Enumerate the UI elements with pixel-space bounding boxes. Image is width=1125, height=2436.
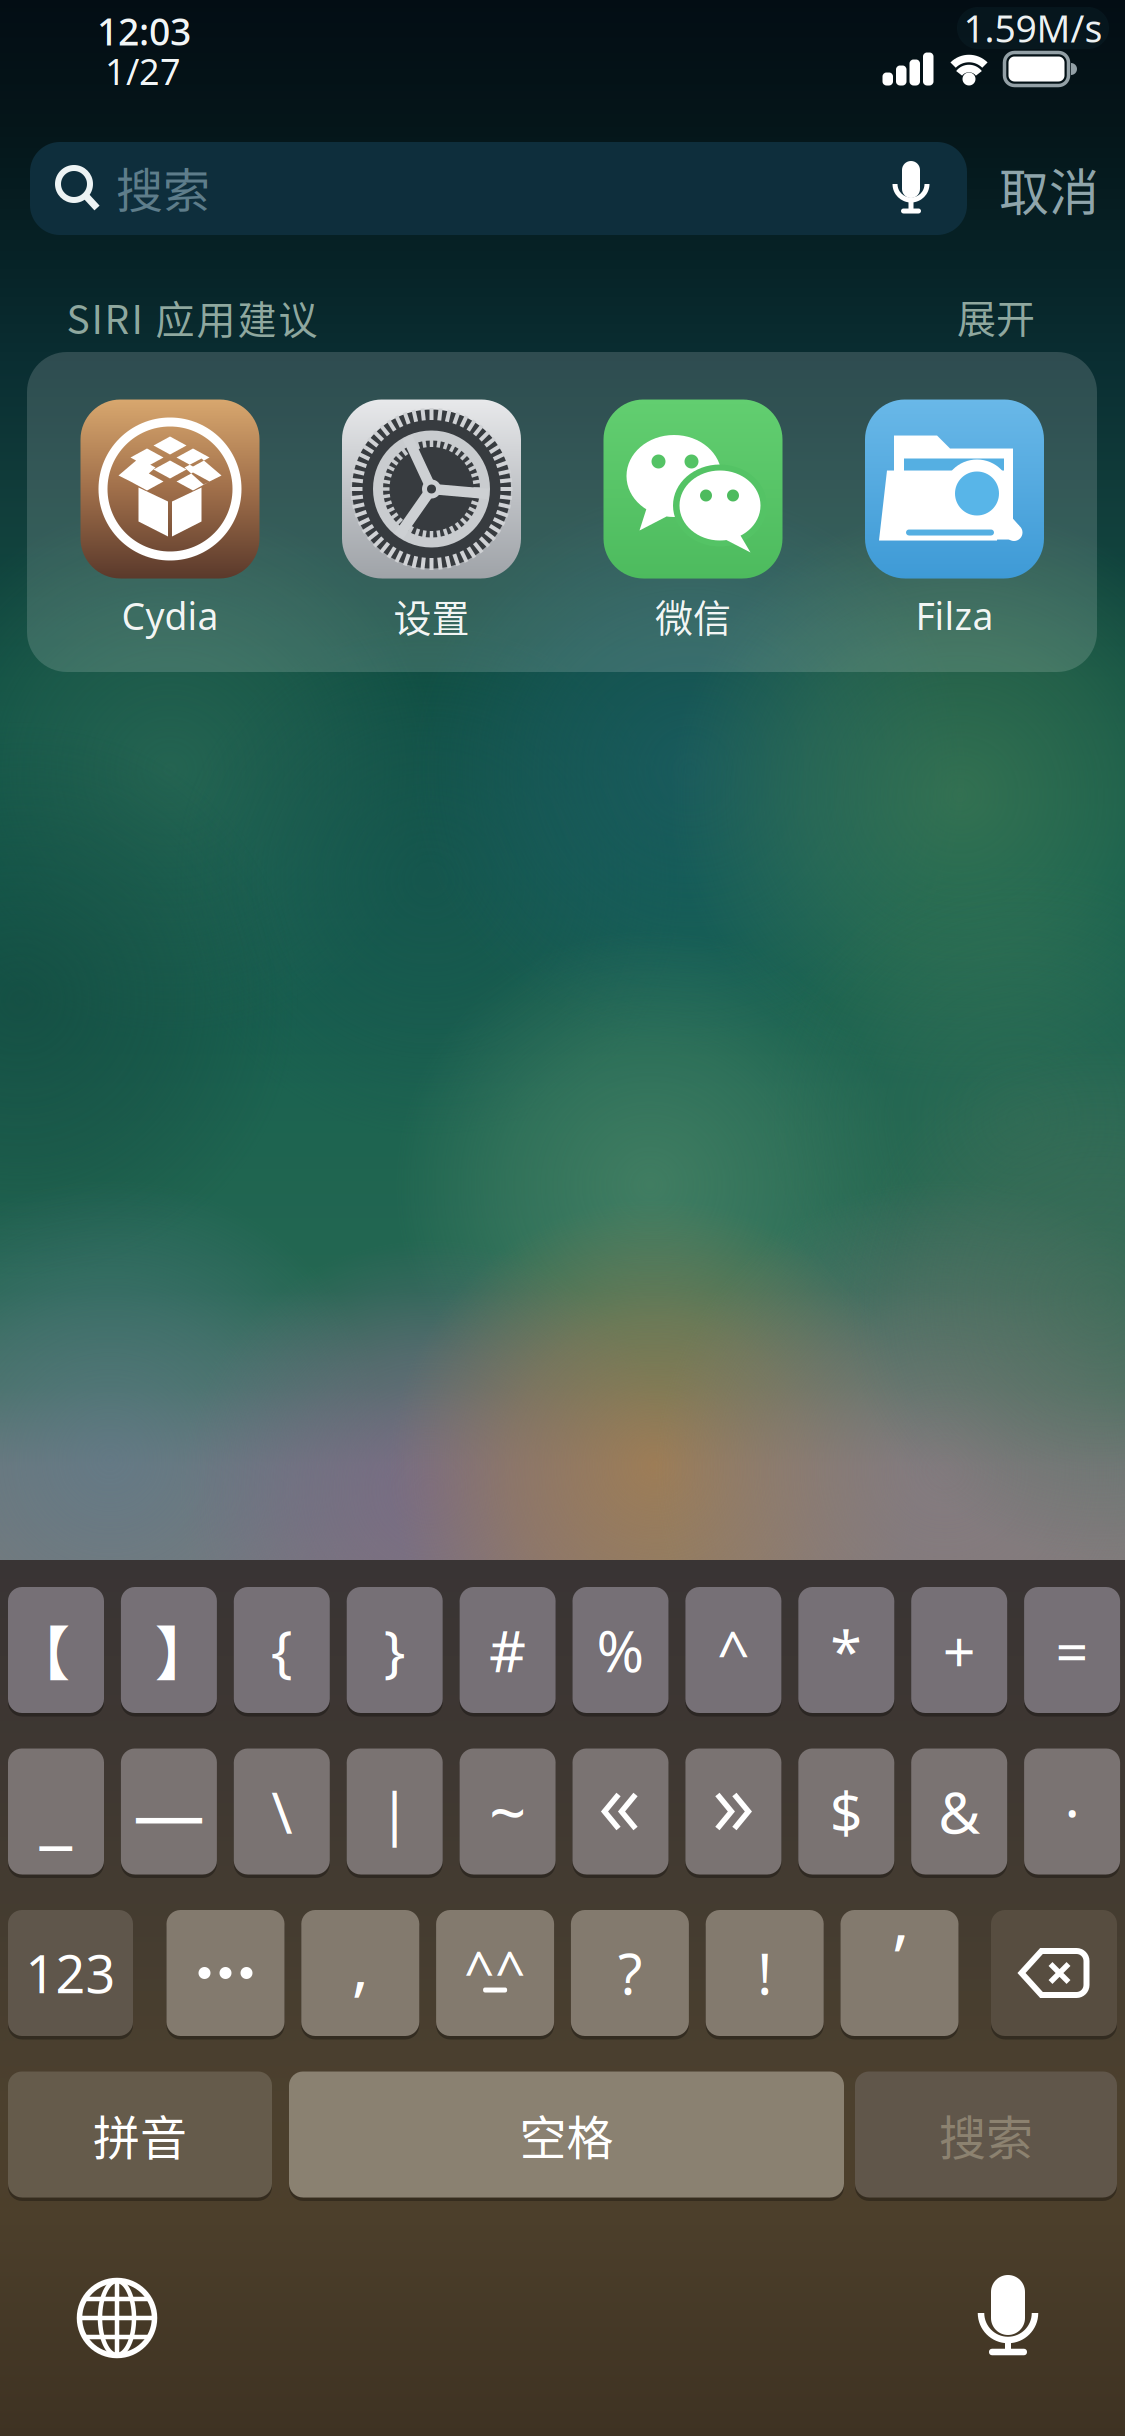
button[interactable]: 拼音 bbox=[8, 2069, 272, 2199]
button[interactable]: ? bbox=[571, 1908, 689, 2038]
staticText: — bbox=[133, 1764, 205, 1859]
staticText: ~ bbox=[489, 1768, 526, 1855]
staticText: 拼音 bbox=[93, 2100, 187, 2169]
staticText: 【 bbox=[12, 1608, 70, 1692]
staticText: \ bbox=[271, 1773, 292, 1849]
staticText: } bbox=[384, 1612, 406, 1688]
button[interactable]: , bbox=[301, 1908, 419, 2038]
staticText: ^ bbox=[717, 1612, 750, 1688]
button[interactable]: Filza bbox=[849, 399, 1059, 659]
staticText: 123 bbox=[25, 1938, 115, 2008]
button[interactable]: 空格 bbox=[289, 2069, 844, 2199]
button[interactable]: } bbox=[347, 1585, 443, 1715]
staticText: & bbox=[938, 1773, 980, 1849]
button[interactable]: | bbox=[347, 1746, 443, 1876]
button[interactable]: · bbox=[1024, 1746, 1120, 1876]
staticText: 1.59M/s bbox=[963, 3, 1102, 53]
button[interactable]: Left guillemet bbox=[572, 1746, 668, 1876]
staticText: 微信 bbox=[655, 588, 731, 643]
staticText: 空格 bbox=[519, 2100, 613, 2169]
staticText: 1/27 bbox=[105, 47, 181, 95]
button[interactable]: # bbox=[460, 1585, 556, 1715]
staticText: { bbox=[271, 1612, 293, 1688]
staticText: SIRI 应用建议 bbox=[66, 289, 317, 345]
staticText: 设置 bbox=[393, 588, 469, 643]
button[interactable]: 展开 bbox=[957, 288, 1035, 344]
staticText: · bbox=[1065, 1773, 1080, 1849]
button[interactable]: + bbox=[911, 1585, 1007, 1715]
button[interactable]: 】 bbox=[121, 1585, 217, 1715]
button[interactable]: * bbox=[798, 1585, 894, 1715]
button[interactable]: \ bbox=[234, 1746, 330, 1876]
staticText: 】 bbox=[155, 1608, 213, 1692]
staticText: , bbox=[352, 1922, 369, 2007]
button[interactable]: ! bbox=[706, 1908, 824, 2038]
staticText: # bbox=[489, 1612, 526, 1688]
staticText: | bbox=[379, 1773, 411, 1849]
button[interactable]: = bbox=[1024, 1585, 1120, 1715]
button[interactable]: _ bbox=[8, 1746, 104, 1876]
button[interactable]: & bbox=[911, 1746, 1007, 1876]
staticText: = bbox=[1056, 1612, 1089, 1688]
button[interactable]: ^ bbox=[685, 1585, 781, 1715]
button[interactable]: 微信 bbox=[588, 399, 798, 659]
button[interactable]: ~ bbox=[460, 1746, 556, 1876]
staticText: ! bbox=[757, 1936, 772, 2010]
button[interactable]: 取消 bbox=[999, 153, 1099, 225]
button[interactable]: Next keyboard bbox=[77, 2278, 157, 2358]
staticText: Filza bbox=[915, 591, 993, 640]
staticText: 搜索 bbox=[939, 2100, 1033, 2169]
button[interactable]: Dictation bbox=[970, 2273, 1046, 2361]
staticText: Cydia bbox=[121, 591, 218, 640]
button[interactable]: 123 bbox=[8, 1908, 133, 2038]
button[interactable]: — bbox=[121, 1746, 217, 1876]
button[interactable]: Ellipsis bbox=[166, 1908, 284, 2038]
button[interactable]: % bbox=[572, 1585, 668, 1715]
button[interactable]: ’ bbox=[840, 1908, 958, 2038]
staticText: $ bbox=[830, 1773, 863, 1849]
button[interactable]: Delete bbox=[991, 1908, 1117, 2038]
staticText: 12:03 bbox=[97, 6, 191, 56]
staticText: ^^ bbox=[464, 1934, 526, 2004]
staticText: 展开 bbox=[957, 288, 1035, 344]
staticText: 搜索 bbox=[116, 153, 210, 221]
button[interactable]: Cydia bbox=[65, 399, 275, 659]
button[interactable]: Right guillemet bbox=[685, 1746, 781, 1876]
button[interactable]: 搜索 bbox=[30, 142, 967, 235]
button[interactable]: $ bbox=[798, 1746, 894, 1876]
staticText: ? bbox=[618, 1936, 642, 2010]
staticText: _ bbox=[39, 1763, 72, 1860]
button[interactable]: 设置 bbox=[326, 399, 536, 659]
staticText: * bbox=[830, 1612, 862, 1688]
staticText: 取消 bbox=[999, 153, 1099, 225]
button[interactable]: ^^ bbox=[436, 1908, 554, 2038]
staticText: ’ bbox=[894, 1914, 905, 2000]
staticText: + bbox=[943, 1612, 976, 1688]
button[interactable]: 搜索 bbox=[855, 2069, 1117, 2199]
staticText: % bbox=[596, 1612, 644, 1688]
button[interactable]: 【 bbox=[8, 1585, 104, 1715]
button[interactable]: { bbox=[234, 1585, 330, 1715]
